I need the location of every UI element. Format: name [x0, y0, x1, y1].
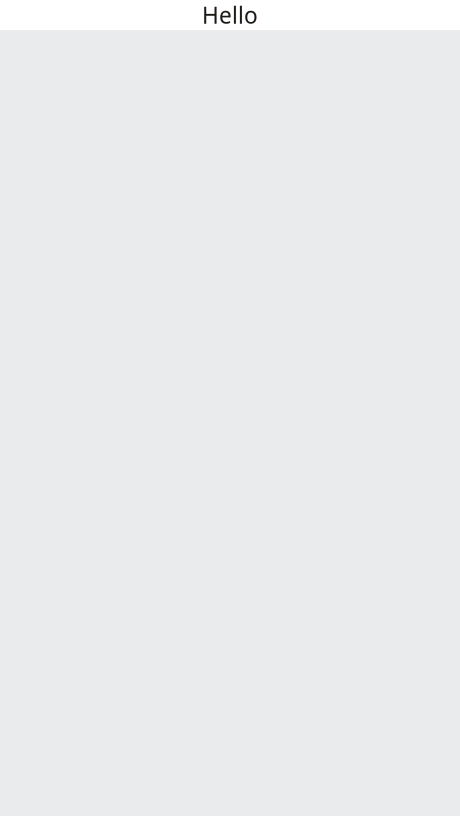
staticText: Hello: [202, 0, 258, 30]
